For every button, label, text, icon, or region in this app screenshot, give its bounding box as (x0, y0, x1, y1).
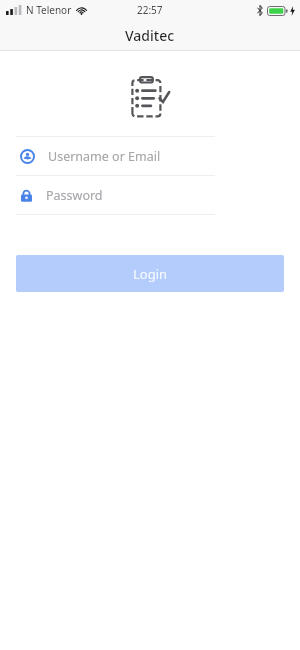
button[interactable]: Login (16, 255, 284, 292)
staticText: Username or Email (48, 148, 161, 165)
staticText: 22:57 (137, 3, 163, 17)
button[interactable]: Password (0, 176, 300, 214)
staticText: N Telenor (26, 3, 72, 17)
staticText: Vaditec (125, 26, 175, 45)
staticText: Password (46, 187, 103, 204)
other: Username (21, 150, 34, 163)
staticText: Login (133, 265, 168, 283)
button[interactable]: Username (0, 137, 300, 175)
other: Password (21, 189, 32, 202)
